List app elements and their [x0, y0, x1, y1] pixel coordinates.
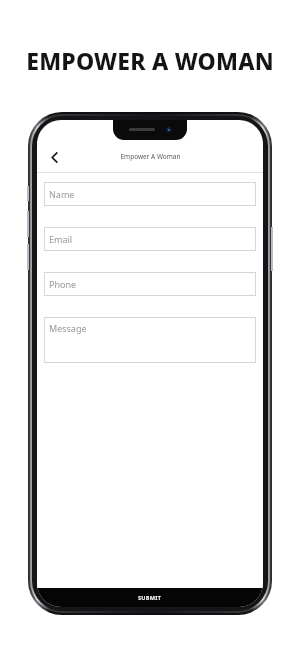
button[interactable]: Name	[44, 182, 256, 206]
staticText: Name	[49, 188, 75, 200]
button[interactable]: Back	[42, 145, 66, 169]
staticText: Empower A Woman	[120, 152, 181, 161]
staticText: SUBMIT	[138, 594, 162, 601]
staticText: Message	[49, 322, 87, 334]
button[interactable]: Email	[44, 227, 256, 251]
button[interactable]: Phone	[44, 272, 256, 296]
button[interactable]: Message	[44, 317, 256, 363]
button[interactable]: SUBMIT	[37, 588, 263, 607]
staticText: Email	[49, 233, 73, 245]
staticText: EMPOWER A WOMAN	[26, 45, 274, 76]
staticText: Phone	[49, 278, 77, 290]
